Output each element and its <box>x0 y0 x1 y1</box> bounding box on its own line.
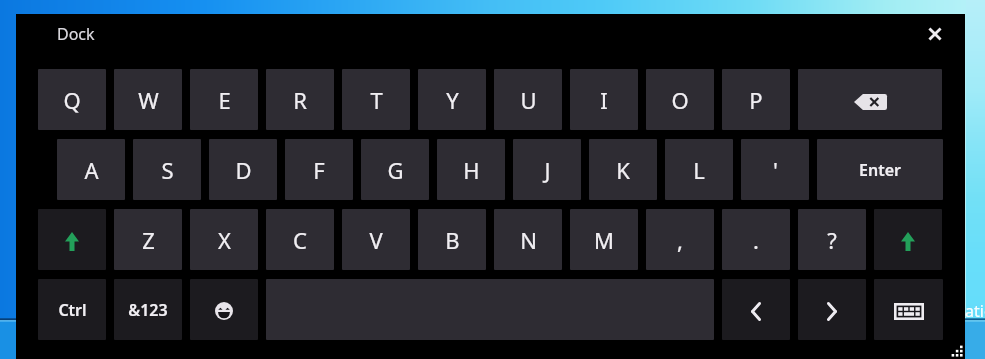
button[interactable]: , <box>646 209 714 270</box>
button[interactable]: Q <box>38 69 106 130</box>
button[interactable]: Emoji <box>190 279 258 340</box>
button[interactable]: Move cursor left <box>722 279 790 340</box>
button[interactable]: Shift <box>874 209 942 270</box>
button[interactable]: S <box>133 139 201 200</box>
staticText: Ctrl <box>58 299 87 321</box>
staticText: , <box>677 225 683 255</box>
button[interactable]: T <box>342 69 410 130</box>
staticText: Y <box>446 85 459 115</box>
button[interactable]: Dock <box>40 16 160 52</box>
staticText: ' <box>773 155 778 185</box>
button[interactable]: B <box>418 209 486 270</box>
staticText: X <box>218 225 231 255</box>
button[interactable]: Z <box>114 209 182 270</box>
staticText: Dock <box>57 23 95 45</box>
button[interactable]: H <box>437 139 505 200</box>
button[interactable]: G <box>361 139 429 200</box>
button[interactable]: X <box>190 209 258 270</box>
button[interactable]: E <box>190 69 258 130</box>
staticText: S <box>161 155 174 185</box>
button[interactable]: R <box>266 69 334 130</box>
button[interactable]: L <box>665 139 733 200</box>
button[interactable]: J <box>513 139 581 200</box>
staticText: K <box>616 155 630 185</box>
staticText: N <box>520 225 537 255</box>
staticText: A <box>84 155 99 185</box>
staticText: E <box>218 85 231 115</box>
button[interactable]: Shift <box>38 209 106 270</box>
button[interactable]: ? <box>798 209 866 270</box>
staticText: U <box>520 85 537 115</box>
button[interactable]: ' <box>741 139 809 200</box>
staticText: Enter <box>859 159 901 181</box>
button[interactable]: Close <box>919 18 951 50</box>
button[interactable]: P <box>722 69 790 130</box>
button[interactable]: I <box>570 69 638 130</box>
staticText: O <box>671 85 689 115</box>
staticText: P <box>749 85 763 115</box>
button[interactable]: A <box>57 139 125 200</box>
staticText: H <box>463 155 480 185</box>
staticText: . <box>753 225 759 255</box>
staticText: W <box>138 85 159 115</box>
button[interactable]: Y <box>418 69 486 130</box>
staticText: B <box>445 225 460 255</box>
staticText: ? <box>827 225 837 255</box>
staticText: ation <box>965 300 985 322</box>
staticText: M <box>594 225 614 255</box>
button[interactable]: &123 <box>114 279 182 340</box>
button[interactable]: . <box>722 209 790 270</box>
button[interactable]: C <box>266 209 334 270</box>
staticText: L <box>693 155 705 185</box>
staticText: J <box>544 155 551 185</box>
staticText: Q <box>63 85 81 115</box>
button[interactable]: Ctrl <box>38 279 106 340</box>
button[interactable]: Switch keyboard layout <box>874 279 943 340</box>
button[interactable]: N <box>494 209 562 270</box>
button[interactable]: W <box>114 69 182 130</box>
staticText: &123 <box>128 299 168 321</box>
staticText: V <box>369 225 383 255</box>
button[interactable]: F <box>285 139 353 200</box>
staticText: D <box>235 155 252 185</box>
staticText: T <box>370 85 383 115</box>
button[interactable]: D <box>209 139 277 200</box>
button[interactable]: O <box>646 69 714 130</box>
button[interactable]: K <box>589 139 657 200</box>
button[interactable]: M <box>570 209 638 270</box>
staticText: I <box>600 85 608 115</box>
staticText: F <box>313 155 325 185</box>
button[interactable]: Backspace <box>798 69 942 130</box>
staticText: R <box>293 85 307 115</box>
button[interactable]: Move cursor right <box>798 279 866 340</box>
staticText: C <box>293 225 307 255</box>
staticText: Z <box>142 225 155 255</box>
button[interactable]: V <box>342 209 410 270</box>
button[interactable]: U <box>494 69 562 130</box>
button[interactable]: Enter <box>817 139 943 200</box>
staticText: G <box>387 155 404 185</box>
